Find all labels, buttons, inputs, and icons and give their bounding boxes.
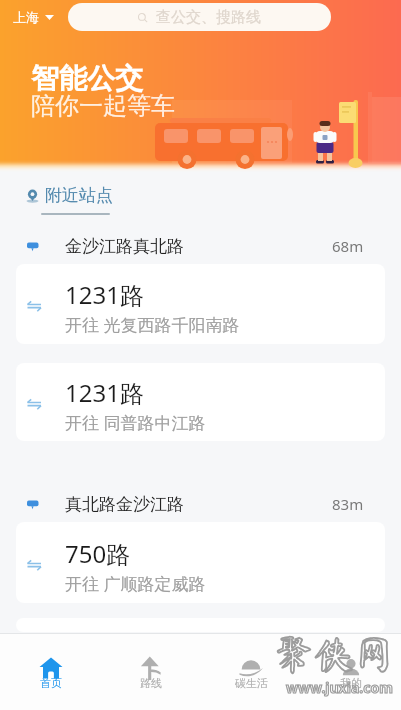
staticText: 聚侠网 bbox=[274, 634, 394, 674]
button[interactable]: 上海 bbox=[13, 9, 54, 25]
staticText: 1231路 bbox=[65, 278, 144, 311]
staticText: 金沙江路真北路 bbox=[65, 236, 184, 257]
staticText: 1231路 bbox=[65, 376, 144, 409]
staticText: 智能公交 bbox=[31, 61, 143, 96]
button[interactable]: 金沙江路真北路 bbox=[26, 235, 364, 257]
staticText: 开往 同普路中江路 bbox=[65, 411, 206, 434]
staticText: 68m bbox=[332, 236, 364, 256]
staticText: 首页 bbox=[40, 676, 62, 690]
staticText: 路线 bbox=[140, 676, 162, 690]
button[interactable]: 附近站点 bbox=[26, 185, 113, 206]
button[interactable]: 1231路 bbox=[16, 363, 385, 441]
button[interactable]: 我的 bbox=[301, 634, 401, 710]
staticText: 我的 bbox=[340, 676, 362, 690]
staticText: 83m bbox=[332, 494, 364, 514]
staticText: 开往 光复西路千阳南路 bbox=[65, 313, 240, 336]
staticText: 陪你一起等车 bbox=[31, 91, 175, 121]
button[interactable]: 1231路 bbox=[16, 264, 385, 344]
button[interactable]: 真北路金沙江路 bbox=[26, 493, 364, 515]
staticText: 碳生活 bbox=[235, 676, 268, 690]
button[interactable]: 首页 bbox=[0, 634, 101, 710]
staticText: 真北路金沙江路 bbox=[65, 494, 184, 515]
button[interactable]: 查公交、搜路线 bbox=[68, 3, 331, 31]
button[interactable]: 750路 bbox=[16, 522, 385, 603]
staticText: 开往 广顺路定威路 bbox=[65, 572, 206, 595]
staticText: 750路 bbox=[65, 537, 131, 570]
staticText: 查公交、搜路线 bbox=[156, 8, 261, 27]
staticText: www.juxia.com bbox=[286, 678, 393, 697]
button[interactable]: 路线 bbox=[101, 634, 201, 710]
staticText: 附近站点 bbox=[45, 185, 113, 206]
button[interactable]: 碳生活 bbox=[201, 634, 301, 710]
staticText: 上海 bbox=[13, 9, 39, 25]
